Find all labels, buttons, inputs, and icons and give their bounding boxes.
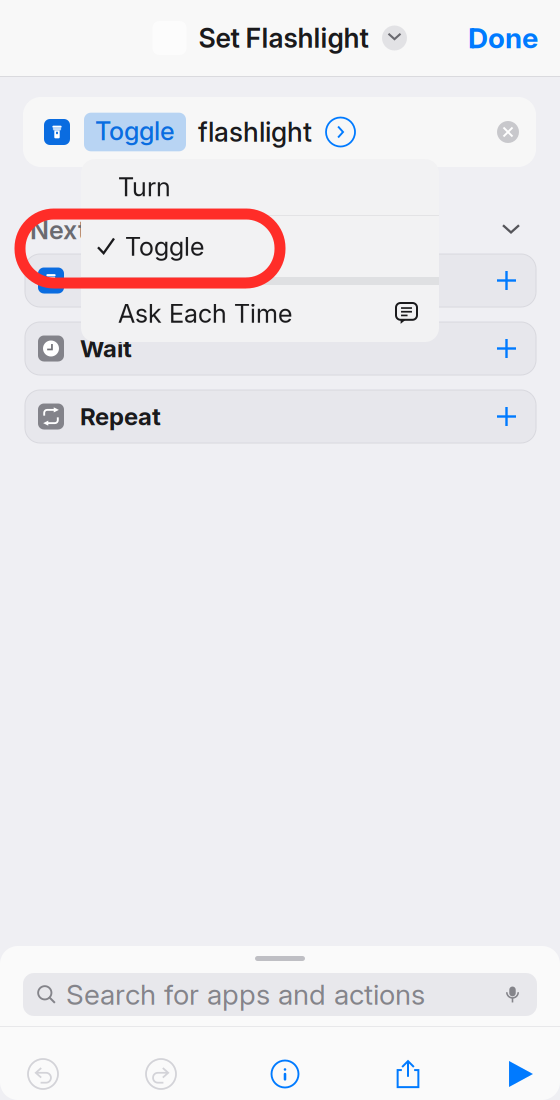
staticText: Toggle xyxy=(125,231,204,262)
button[interactable]: Toggle xyxy=(81,216,439,277)
button[interactable]: Repeat xyxy=(25,390,536,443)
staticText: Set Flashlight xyxy=(80,266,238,295)
staticText: Next Action Suggestions xyxy=(30,215,327,245)
staticText: Toggle xyxy=(95,116,175,146)
staticText: flashlight xyxy=(198,116,312,148)
button[interactable]: Shortcut options xyxy=(368,25,407,51)
button[interactable]: Run shortcut xyxy=(484,1050,558,1098)
button[interactable]: Remove action xyxy=(497,121,536,143)
staticText: Set Flashlight xyxy=(198,22,368,54)
staticText: Wait xyxy=(80,334,132,363)
button[interactable]: Expand parameter xyxy=(312,117,355,146)
button[interactable]: Turn xyxy=(81,159,439,215)
button[interactable]: Toggle xyxy=(70,113,186,151)
staticText: Turn xyxy=(118,172,171,202)
staticText: Repeat xyxy=(80,402,161,431)
button[interactable]: Wait xyxy=(25,322,536,375)
button[interactable]: Share xyxy=(332,1050,484,1098)
staticText: Search for apps and actions xyxy=(66,978,425,1011)
staticText: Done xyxy=(468,21,538,55)
button[interactable]: Set Flashlight xyxy=(25,254,536,307)
button[interactable]: Redo xyxy=(84,1050,238,1098)
staticText: Ask Each Time xyxy=(118,298,292,329)
button[interactable]: Ask Each Time xyxy=(81,285,439,342)
button[interactable]: Undo xyxy=(2,1050,84,1098)
button[interactable]: Done xyxy=(454,11,560,65)
button[interactable]: Shortcut details xyxy=(238,1050,332,1098)
